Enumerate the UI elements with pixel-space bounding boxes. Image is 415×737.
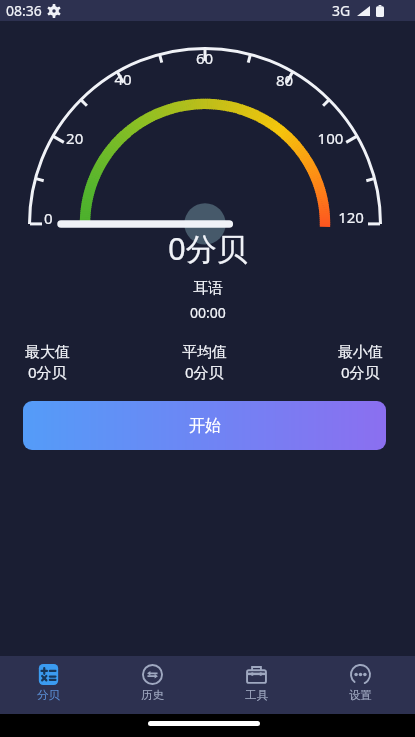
button[interactable]: 开始 bbox=[23, 401, 386, 450]
staticText: 00:00 bbox=[190, 303, 226, 322]
button[interactable]: 历史 bbox=[100, 656, 204, 714]
staticText: 最小值 bbox=[338, 343, 383, 362]
staticText: 历史 bbox=[141, 688, 164, 702]
staticText: 08:36 bbox=[6, 1, 42, 20]
button[interactable]: 分贝 bbox=[0, 656, 100, 714]
staticText: 分贝 bbox=[37, 688, 60, 702]
staticText: 设置 bbox=[349, 688, 372, 702]
staticText: 耳语 bbox=[193, 279, 223, 298]
staticText: 平均值 bbox=[182, 343, 227, 362]
staticText: 0分贝 bbox=[185, 362, 224, 382]
staticText: 开始 bbox=[189, 416, 221, 436]
staticText: 3G bbox=[332, 1, 351, 20]
staticText: 最大值 bbox=[25, 343, 70, 362]
staticText: 0分贝 bbox=[28, 362, 67, 382]
staticText: 工具 bbox=[245, 688, 268, 702]
staticText: 0分贝 bbox=[341, 362, 380, 382]
button[interactable]: 工具 bbox=[204, 656, 308, 714]
button[interactable]: 设置 bbox=[308, 656, 412, 714]
staticText: 0分贝 bbox=[168, 227, 248, 269]
